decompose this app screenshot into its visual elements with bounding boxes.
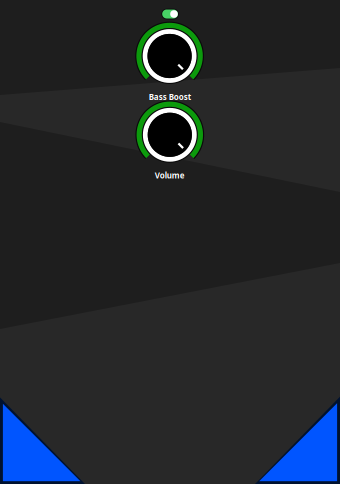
- button[interactable]: Power: [161, 9, 179, 19]
- staticText: Volume: [155, 170, 185, 181]
- button[interactable]: Bass Boost level: [135, 22, 204, 90]
- button[interactable]: Volume level: [136, 101, 204, 169]
- staticText: Bass Boost: [149, 91, 191, 102]
